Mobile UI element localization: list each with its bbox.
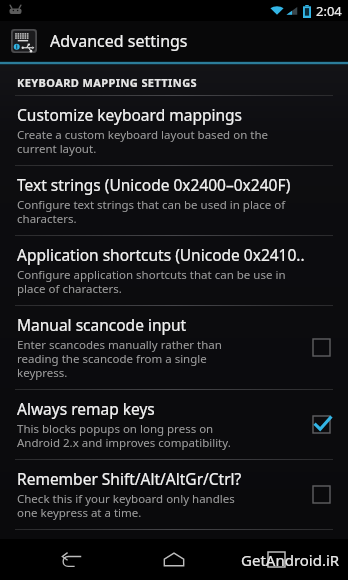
button[interactable]: Unchecked <box>306 332 336 362</box>
staticText: KEYBOARD MAPPING SETTINGS <box>17 75 197 90</box>
button[interactable]: Customize keyboard mappings <box>0 96 348 165</box>
staticText: Check this if your keyboard only handles… <box>17 491 235 520</box>
staticText: Customize keyboard mappings <box>17 104 242 125</box>
staticText: Configure application shortcuts that can… <box>17 267 286 296</box>
button[interactable]: Application shortcuts (Unicode 0x2410.. <box>0 236 348 305</box>
button[interactable]: Always remap keys <box>0 390 348 459</box>
staticText: Always remap keys <box>17 398 155 419</box>
button[interactable]: Remember Shift/Alt/AltGr/Ctrl? <box>0 460 348 529</box>
staticText: Manual scancode input <box>17 314 187 335</box>
staticText: 2:04 <box>316 2 342 20</box>
staticText: Create a custom keyboard layout based on… <box>17 127 268 156</box>
staticText: This blocks popups on long press on Andr… <box>17 421 231 450</box>
staticText: Remember Shift/Alt/AltGr/Ctrl? <box>17 468 242 489</box>
staticText: Enter scancodes manually rather than rea… <box>17 337 222 380</box>
staticText: GetAndroid.iR <box>241 550 340 570</box>
button[interactable]: Unchecked <box>306 479 336 509</box>
button[interactable]: Manual scancode input <box>0 306 348 389</box>
button[interactable]: Home <box>144 539 204 580</box>
button[interactable]: Advanced settings <box>0 21 348 61</box>
staticText: Advanced settings <box>50 30 188 52</box>
staticText: Text strings (Unicode 0x2400–0x240F) <box>17 174 291 195</box>
button[interactable]: Text strings (Unicode 0x2400–0x240F) <box>0 166 348 235</box>
button[interactable]: Checked <box>306 409 336 439</box>
button[interactable]: Recent apps <box>246 539 306 580</box>
staticText: Configure text strings that can be used … <box>17 197 286 226</box>
button[interactable]: Back <box>42 539 102 580</box>
staticText: Application shortcuts (Unicode 0x2410.. <box>17 244 305 265</box>
